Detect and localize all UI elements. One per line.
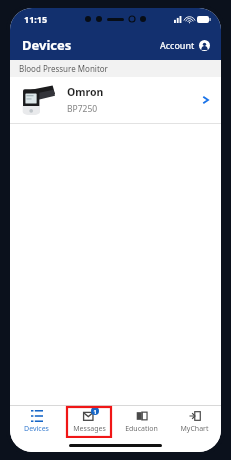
other: MyChart [189, 410, 201, 422]
staticText: Blood Pressure Monitor [19, 63, 108, 74]
staticText: BP7250 [67, 103, 98, 115]
other: Education [136, 410, 148, 422]
other: Devices [31, 410, 43, 422]
staticText: Omron [67, 85, 104, 99]
button[interactable]: Devices [22, 408, 51, 436]
staticText: MyChart [180, 424, 209, 434]
staticText: 1 [93, 408, 97, 415]
staticText: 11:15 [24, 13, 48, 25]
button[interactable]: MyChart [178, 408, 211, 436]
button[interactable]: Account [157, 36, 213, 54]
staticText: Devices [24, 424, 49, 434]
staticText: Account [160, 39, 195, 51]
button[interactable]: Education [123, 408, 160, 436]
staticText: Messages [73, 424, 106, 434]
staticText: Education [125, 424, 158, 434]
other: Messages [83, 410, 95, 422]
button[interactable]: Omron [10, 77, 221, 123]
button[interactable]: Messages [68, 406, 110, 438]
staticText: Devices [22, 36, 72, 54]
